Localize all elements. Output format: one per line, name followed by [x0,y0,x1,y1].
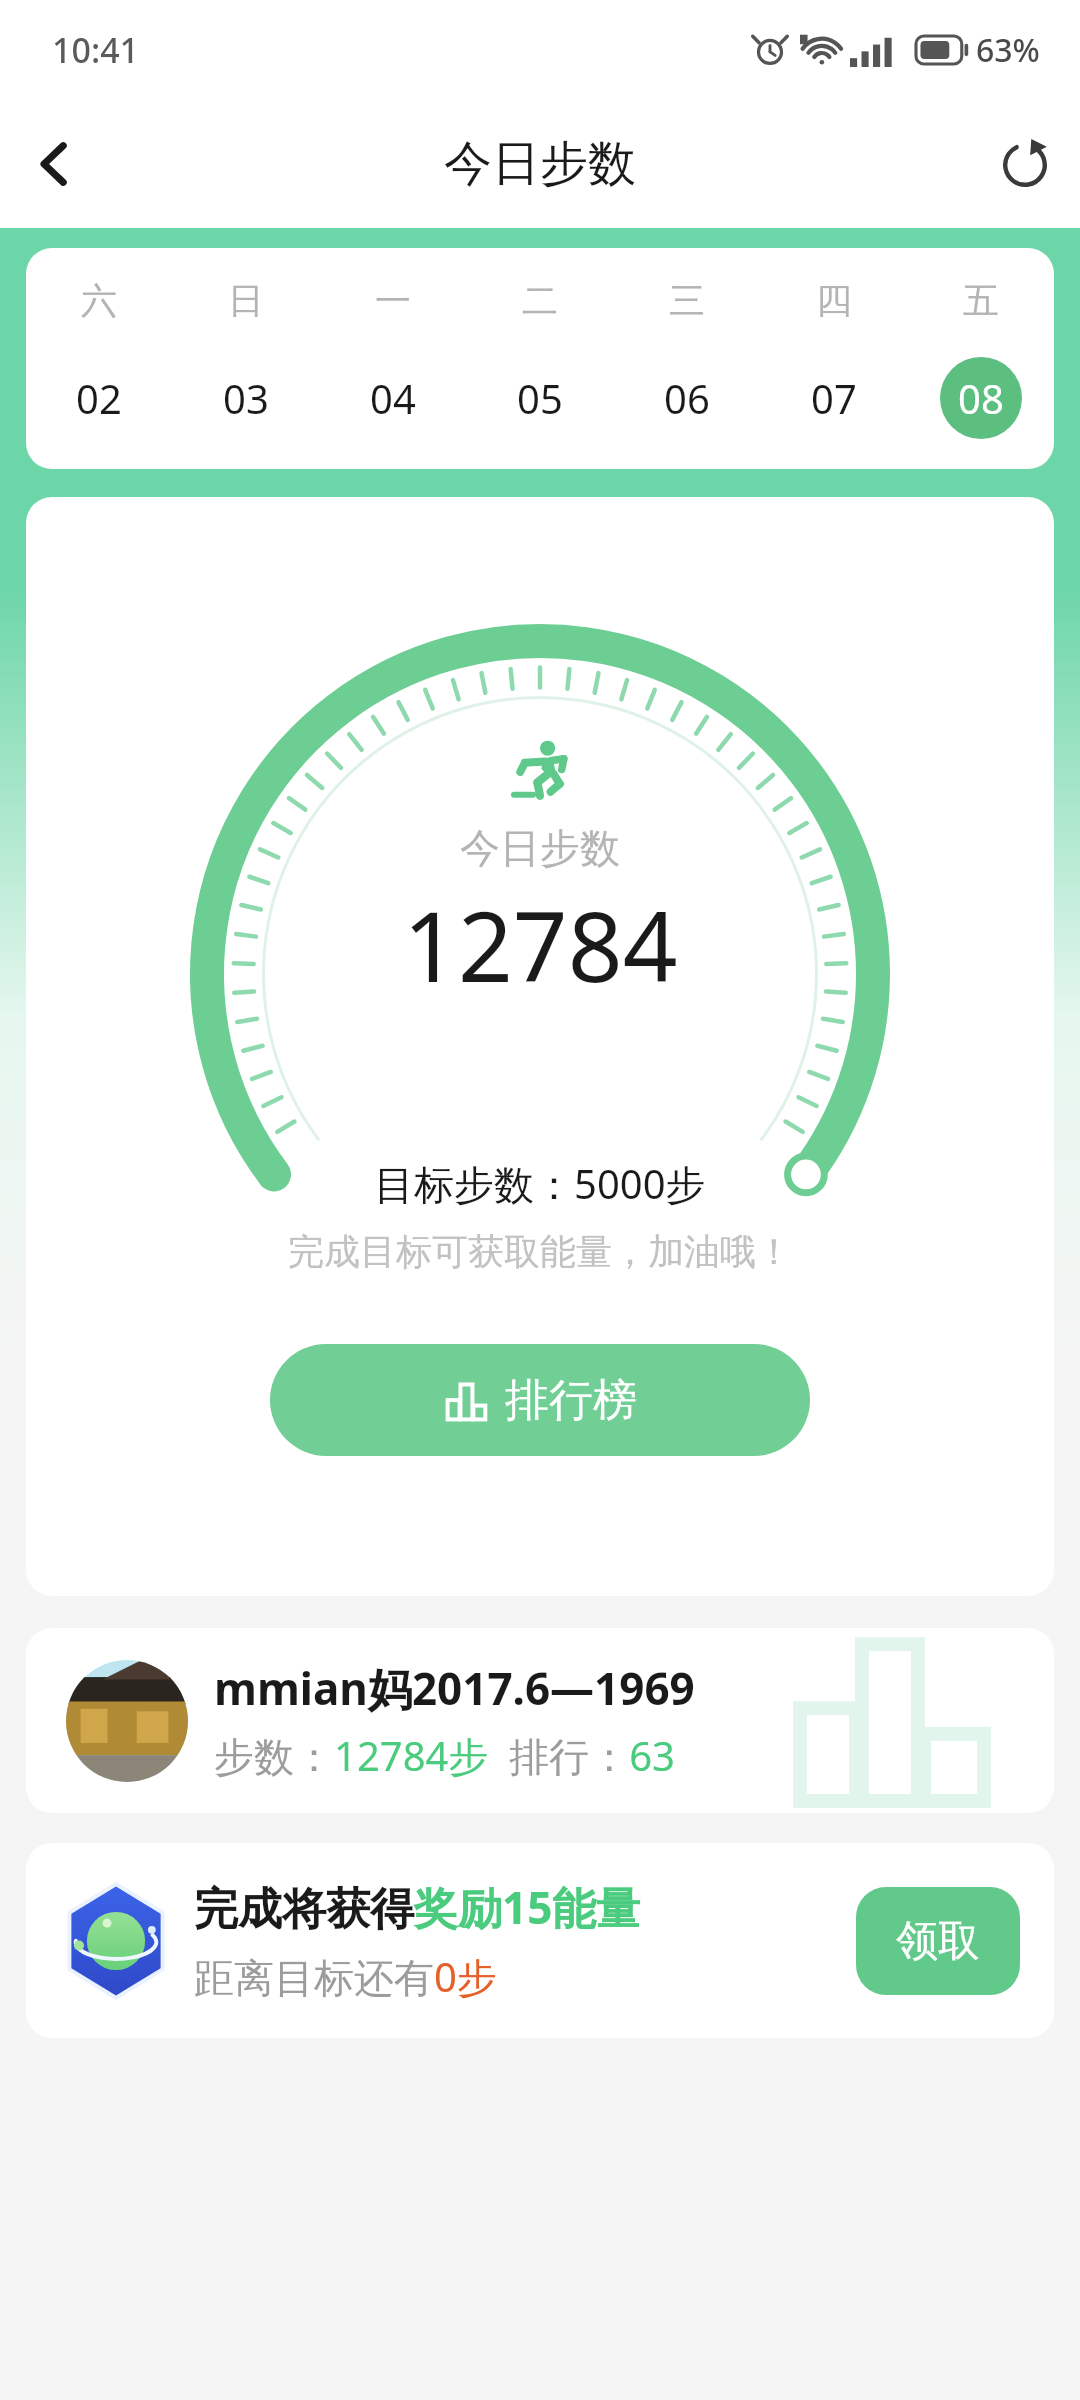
staticText: 六 [81,278,117,323]
staticText: 完成目标可获取能量，加油哦！ [288,1229,792,1274]
staticText: 三 [669,278,705,323]
staticText: 日 [228,278,264,323]
staticText: 06 [664,371,710,425]
staticText: 07 [811,371,857,425]
staticText: 完成将获得奖励15能量 [194,1877,641,1937]
button[interactable]: 05 [499,357,581,439]
button[interactable]: 领取 [856,1887,1020,1995]
staticText: 今日步数 [460,823,620,873]
staticText: 63% [976,28,1040,72]
staticText: 四 [816,278,852,323]
staticText: 05 [517,371,563,425]
staticText: 领取 [896,1915,980,1968]
button[interactable]: 08 [940,357,1022,439]
staticText: 步数：12784步 排行：63 [214,1728,675,1783]
staticText: 10:41 [52,27,140,73]
staticText: 04 [370,371,416,425]
button[interactable]: 07 [793,357,875,439]
staticText: 五 [963,278,999,323]
button[interactable]: 02 [58,357,140,439]
button[interactable]: Back [0,109,110,219]
button[interactable]: 04 [352,357,434,439]
staticText: 03 [223,371,269,425]
staticText: 08 [958,371,1004,425]
staticText: 二 [522,278,558,323]
staticText: mmian妈2017.6—1969 [214,1658,695,1718]
staticText: 今日步数 [444,134,636,194]
staticText: 目标步数：5000步 [374,1156,706,1211]
button[interactable]: mmian妈2017.6—1969 [26,1628,1054,1813]
staticText: 02 [76,371,122,425]
staticText: 一 [375,278,411,323]
staticText: 排行榜 [505,1373,637,1428]
button[interactable]: 03 [205,357,287,439]
button[interactable]: Share [970,109,1080,219]
staticText: 距离目标还有0步 [194,1949,497,2004]
button[interactable]: 排行榜 [270,1344,810,1456]
button[interactable]: 06 [646,357,728,439]
staticText: 12784 [403,879,678,1010]
